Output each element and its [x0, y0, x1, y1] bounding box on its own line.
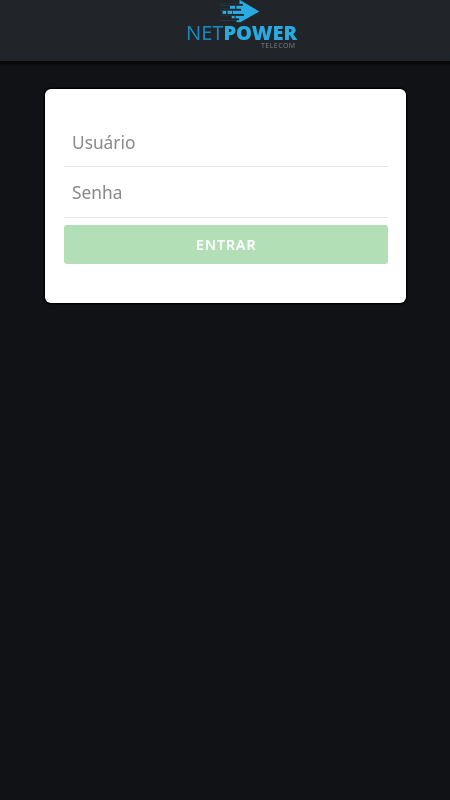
staticText: Senha [72, 181, 123, 205]
button[interactable]: Usuário [64, 116, 388, 167]
button[interactable]: ENTRAR [64, 225, 388, 264]
staticText: NETPOWER [186, 19, 298, 46]
button[interactable]: Senha [64, 167, 388, 218]
other: NetPower logo [220, 0, 262, 24]
staticText: ENTRAR [196, 235, 257, 254]
staticText: Usuário [72, 131, 136, 155]
staticText: TELECOM [261, 41, 296, 51]
